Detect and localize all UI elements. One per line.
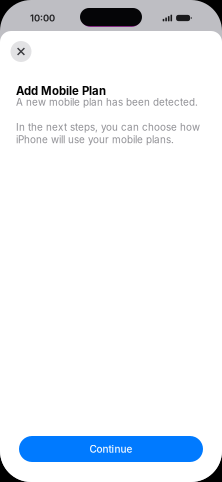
staticText: Continue [89,443,132,455]
staticText: In the next steps, you can choose how [16,121,200,133]
button[interactable]: Close [10,41,31,62]
staticText: Add Mobile Plan [16,84,106,98]
button[interactable]: Continue [19,436,203,462]
staticText: iPhone will use your mobile plans. [16,134,174,145]
staticText: 10:00 [30,12,55,24]
staticText: A new mobile plan has been detected. [16,96,198,108]
